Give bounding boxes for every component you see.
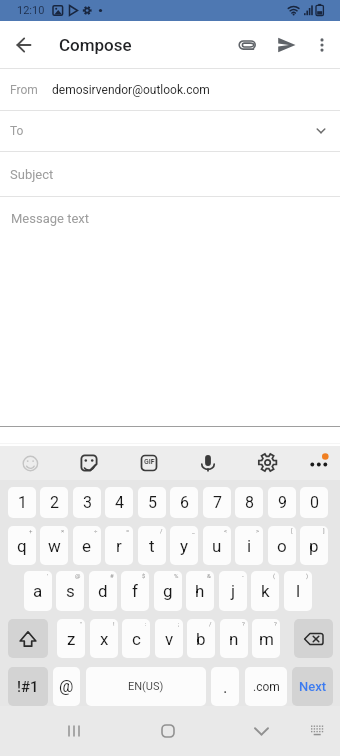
button[interactable]: Space — [86, 667, 206, 706]
staticText: !#1 — [17, 678, 39, 696]
button[interactable]: q — [8, 526, 36, 565]
staticText: z — [67, 629, 76, 649]
button[interactable]: Change keyboard — [255, 706, 340, 756]
button[interactable]: 9 — [268, 487, 296, 518]
button[interactable]: To — [0, 111, 340, 151]
button[interactable]: f — [121, 571, 149, 611]
button[interactable]: 2 — [40, 487, 68, 518]
staticText: q — [17, 536, 27, 556]
staticText: ÷ — [94, 527, 98, 534]
button[interactable]: 1 — [8, 487, 36, 518]
button[interactable]: More — [283, 446, 340, 480]
staticText: h — [195, 581, 205, 601]
button[interactable]: More options — [306, 29, 338, 61]
staticText: r — [116, 536, 122, 556]
staticText: p — [309, 536, 319, 556]
button[interactable]: k — [251, 571, 279, 611]
staticText: + — [29, 527, 33, 534]
staticText: % — [174, 572, 179, 579]
button[interactable]: b — [187, 619, 215, 658]
staticText: i — [247, 536, 252, 556]
button[interactable]: r — [105, 526, 133, 565]
button[interactable]: i — [235, 526, 263, 565]
button[interactable]: a — [24, 571, 52, 611]
staticText: @ — [75, 572, 81, 579]
button[interactable]: Emoji — [0, 446, 56, 480]
button[interactable]: 0 — [300, 487, 328, 518]
button[interactable]: d — [89, 571, 117, 611]
button[interactable]: y — [170, 526, 198, 565]
staticText: 6 — [180, 493, 189, 512]
staticText: demosirvendor@outlook.com — [52, 83, 210, 97]
staticText: f — [132, 581, 138, 601]
button[interactable]: o — [268, 526, 296, 565]
staticText: × — [61, 527, 65, 534]
button[interactable]: 4 — [105, 487, 133, 518]
button[interactable]: w — [40, 526, 68, 565]
staticText: < — [224, 527, 228, 534]
staticText: ' — [47, 572, 49, 579]
button[interactable]: s — [56, 571, 84, 611]
button[interactable]: 6 — [170, 487, 198, 518]
button[interactable]: e — [73, 526, 101, 565]
staticText: _ — [192, 527, 195, 534]
button[interactable]: h — [186, 571, 214, 611]
button[interactable]: x — [90, 619, 118, 658]
button[interactable]: p — [300, 526, 328, 565]
button[interactable]: Send — [269, 27, 305, 63]
button[interactable]: z — [57, 619, 85, 658]
button[interactable]: l — [284, 571, 312, 611]
button[interactable]: Voice input — [169, 446, 226, 480]
button[interactable]: 7 — [203, 487, 231, 518]
button[interactable]: .com — [245, 667, 287, 706]
staticText: Next — [299, 679, 327, 694]
staticText: o — [277, 536, 287, 556]
button[interactable]: !#1 — [8, 667, 48, 706]
staticText: y — [180, 536, 189, 556]
button[interactable]: Settings — [226, 446, 283, 480]
button[interactable]: Shift — [8, 619, 48, 658]
staticText: 8 — [245, 493, 254, 512]
button[interactable]: 3 — [73, 487, 101, 518]
staticText: To — [10, 124, 24, 138]
button[interactable]: 5 — [138, 487, 166, 518]
button[interactable]: 8 — [235, 487, 263, 518]
button[interactable]: m — [252, 619, 280, 658]
staticText: > — [256, 527, 260, 534]
button[interactable]: @ — [53, 667, 80, 706]
button[interactable]: Back — [6, 27, 42, 63]
button[interactable]: Stickers — [56, 446, 112, 480]
staticText: c — [132, 629, 141, 649]
staticText: ] — [323, 527, 325, 534]
button[interactable]: Attach file — [229, 27, 265, 63]
button[interactable]: c — [122, 619, 150, 658]
button[interactable]: Backspace — [294, 619, 333, 658]
staticText: From — [10, 83, 38, 97]
button[interactable]: Recents — [0, 706, 85, 756]
button[interactable]: Home — [85, 706, 170, 756]
button[interactable]: Next — [292, 667, 333, 706]
button[interactable]: . — [211, 667, 239, 706]
button[interactable]: t — [138, 526, 166, 565]
staticText: ? — [242, 620, 245, 627]
button[interactable]: u — [203, 526, 231, 565]
staticText: 1 — [18, 493, 27, 512]
staticText: 3 — [83, 493, 92, 512]
staticText: Subject — [10, 167, 54, 182]
button[interactable]: Subject — [0, 152, 340, 196]
button[interactable]: j — [219, 571, 247, 611]
staticText: # — [110, 572, 114, 579]
button[interactable]: n — [220, 619, 248, 658]
staticText: EN(US) — [128, 680, 164, 693]
staticText: @ — [59, 677, 74, 696]
staticText: .com — [253, 680, 280, 694]
button[interactable]: Hide keyboard — [170, 706, 255, 756]
button[interactable]: g — [154, 571, 182, 611]
button[interactable]: From — [0, 69, 340, 110]
staticText: / — [160, 527, 163, 534]
button[interactable]: GIF — [112, 446, 169, 480]
staticText: ; — [178, 620, 180, 627]
button[interactable]: v — [155, 619, 183, 658]
staticText: a — [33, 581, 43, 601]
staticText: & — [207, 572, 211, 579]
